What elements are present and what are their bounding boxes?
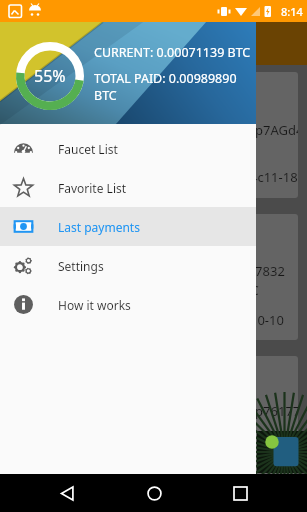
- staticText: 8:14: [281, 4, 303, 19]
- button[interactable]: Last payments: [0, 207, 256, 246]
- staticText: Address: 17A16QmavnUfCW11DAApiJxp76177: [20, 402, 298, 420]
- staticText: Transaction hash: 9c38eef0a13dcbd8f10-10: [20, 311, 284, 329]
- staticText: Transaction hash: 9c38eef0a13dcbd8f4c11-…: [20, 168, 298, 186]
- staticText: Address: 17A16QmavnUfCW11DAApiJx7832: [20, 262, 285, 280]
- staticText: Faucet List: [58, 141, 118, 157]
- staticText: TOTAL PAID: 0.00989890 BTC: [94, 70, 254, 103]
- button[interactable]: Recents: [220, 474, 260, 512]
- button[interactable]: Settings: [0, 246, 256, 285]
- staticText: Settings: [58, 258, 104, 274]
- button[interactable]: How it works: [0, 285, 256, 324]
- button[interactable]: Faucet List: [0, 129, 256, 168]
- staticText: Last payments: [58, 219, 140, 235]
- staticText: Amount: 0.00001283 BTC 0.00004832 C: [20, 281, 259, 299]
- staticText: 55%: [34, 65, 66, 87]
- staticText: Address: 17A16QmavnUfCW11DAApiJxp7AGd4a: [20, 121, 298, 139]
- button[interactable]: Back: [47, 474, 87, 512]
- button[interactable]: Address: 17A16QmavnUfCW11DAApiJx7832: [8, 214, 298, 340]
- button[interactable]: Address: 17A16QmavnUfCW11DAApiJxp7AGd4a: [8, 72, 298, 198]
- button[interactable]: Favorite List: [0, 168, 256, 207]
- staticText: How it works: [58, 297, 131, 313]
- staticText: Favorite List: [58, 180, 127, 196]
- button[interactable]: Home: [134, 474, 174, 512]
- button[interactable]: Address: 17A16QmavnUfCW11DAApiJxp76177: [8, 356, 298, 474]
- staticText: CURRENT: 0.00071139 BTC: [94, 44, 251, 61]
